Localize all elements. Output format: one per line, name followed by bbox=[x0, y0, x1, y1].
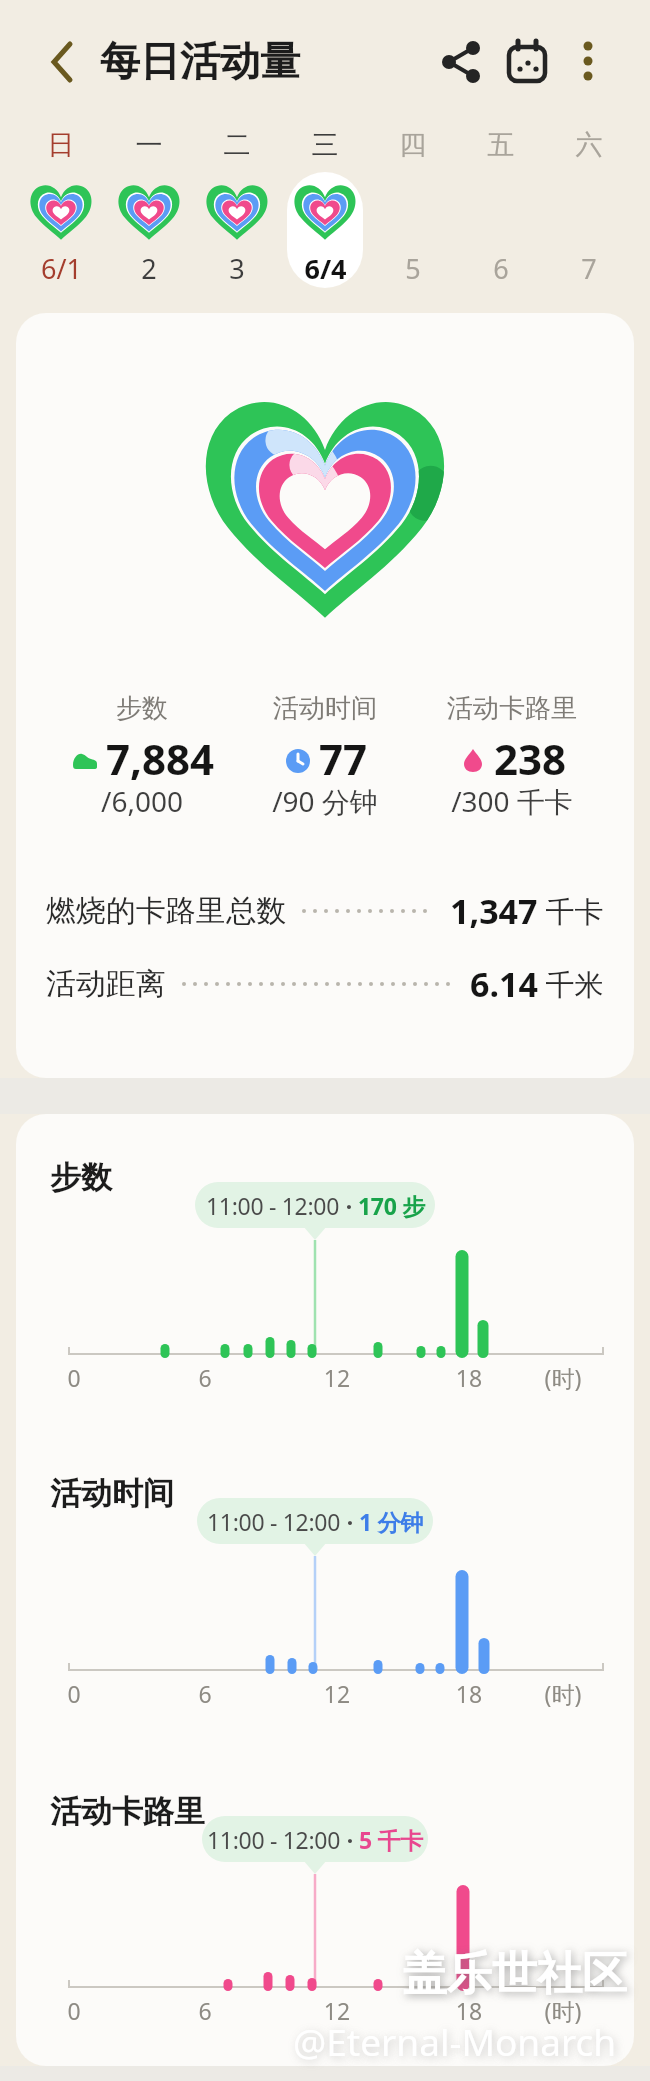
staticText: 12 bbox=[317, 1995, 357, 2026]
staticText: 六 bbox=[545, 128, 633, 162]
staticText: 7 bbox=[581, 250, 597, 284]
staticText: 2 bbox=[141, 250, 157, 284]
staticText: /300 千卡 bbox=[402, 782, 622, 820]
button[interactable] bbox=[562, 33, 614, 85]
button[interactable]: 3 bbox=[193, 250, 281, 284]
button[interactable] bbox=[287, 172, 363, 288]
staticText: · bbox=[341, 1506, 359, 1537]
staticText: 11:00 - 12:00 bbox=[206, 1190, 340, 1221]
staticText: 一 bbox=[105, 128, 193, 162]
staticText: 0 bbox=[54, 1362, 94, 1393]
staticText: (时) bbox=[533, 1678, 593, 1709]
staticText: 1,347 bbox=[450, 888, 538, 934]
staticText: /6,000 bbox=[32, 782, 252, 820]
button[interactable]: 11:00 - 12:00 bbox=[197, 1498, 433, 1544]
staticText: 1 分钟 bbox=[359, 1506, 423, 1537]
staticText: /90 分钟 bbox=[215, 782, 435, 820]
staticText: 活动时间 bbox=[50, 1474, 174, 1513]
staticText: 千米 bbox=[538, 964, 604, 1004]
staticText: · bbox=[340, 1190, 358, 1221]
button[interactable]: 2 bbox=[105, 250, 193, 284]
staticText: 千卡 bbox=[538, 891, 604, 931]
staticText: 6 bbox=[185, 1678, 225, 1709]
staticText: 步数 bbox=[50, 1158, 112, 1197]
staticText: 0 bbox=[54, 1995, 94, 2026]
staticText: 7,884 bbox=[106, 730, 215, 787]
staticText: 18 bbox=[449, 1995, 489, 2026]
staticText: 170 步 bbox=[358, 1190, 425, 1221]
button[interactable]: 5 bbox=[369, 250, 457, 284]
staticText: 活动卡路里 bbox=[402, 692, 622, 725]
staticText: 6 bbox=[185, 1995, 225, 2026]
staticText: 燃烧的卡路里总数 bbox=[46, 892, 286, 930]
staticText: 6.14 bbox=[470, 961, 538, 1007]
staticText: 5 bbox=[405, 250, 421, 284]
staticText: 日 bbox=[17, 128, 105, 162]
staticText: 6/4 bbox=[304, 250, 347, 284]
staticText: 盖乐世社区 bbox=[402, 1946, 627, 2003]
staticText: 6 bbox=[493, 250, 509, 284]
staticText: 6/1 bbox=[41, 250, 82, 284]
staticText: (时) bbox=[533, 1362, 593, 1393]
staticText: 238 bbox=[494, 730, 567, 787]
staticText: 3 bbox=[229, 250, 245, 284]
button[interactable]: 燃烧的卡路里总数 bbox=[46, 888, 604, 934]
button[interactable] bbox=[432, 33, 490, 91]
staticText: 步数 bbox=[32, 692, 252, 725]
button[interactable]: 6 bbox=[457, 250, 545, 284]
button[interactable]: 6/4 bbox=[281, 250, 369, 284]
staticText: · bbox=[341, 1824, 359, 1855]
staticText: 活动卡路里 bbox=[50, 1792, 205, 1831]
staticText: 三 bbox=[281, 128, 369, 162]
staticText: 6 bbox=[185, 1362, 225, 1393]
staticText: 11:00 - 12:00 bbox=[207, 1506, 341, 1537]
button[interactable] bbox=[30, 34, 90, 90]
staticText: 77 bbox=[319, 730, 368, 787]
staticText: 五 bbox=[457, 128, 545, 162]
staticText: 18 bbox=[449, 1362, 489, 1393]
button[interactable]: 11:00 - 12:00 bbox=[195, 1182, 435, 1228]
button[interactable]: 11:00 - 12:00 bbox=[202, 1816, 428, 1862]
button[interactable]: 6/1 bbox=[17, 250, 105, 284]
staticText: 12 bbox=[317, 1362, 357, 1393]
button[interactable]: 7 bbox=[545, 250, 633, 284]
staticText: 11:00 - 12:00 bbox=[207, 1824, 341, 1855]
staticText: @Eternal-Monarch bbox=[293, 2016, 617, 2066]
button[interactable] bbox=[498, 33, 556, 91]
staticText: 5 千卡 bbox=[359, 1824, 423, 1855]
staticText: 12 bbox=[317, 1678, 357, 1709]
staticText: 四 bbox=[369, 128, 457, 162]
staticText: 活动时间 bbox=[215, 692, 435, 725]
staticText: 0 bbox=[54, 1678, 94, 1709]
button[interactable]: 活动距离 bbox=[46, 961, 604, 1007]
staticText: 每日活动量 bbox=[100, 36, 300, 86]
staticText: (时) bbox=[533, 1995, 593, 2026]
staticText: 二 bbox=[193, 128, 281, 162]
staticText: 活动距离 bbox=[46, 965, 166, 1003]
staticText: 18 bbox=[449, 1678, 489, 1709]
